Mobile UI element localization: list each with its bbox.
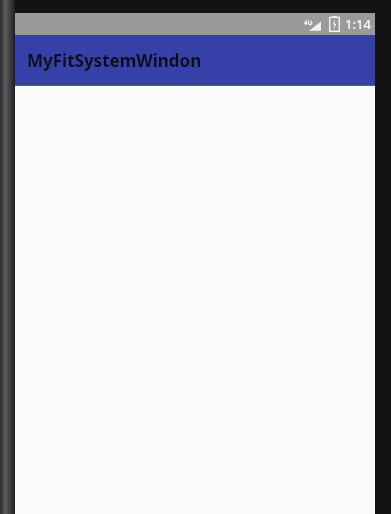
button[interactable]: MyFitSystemWindon bbox=[15, 35, 375, 86]
staticText: MyFitSystemWindon bbox=[27, 49, 202, 72]
staticText: 1:14 bbox=[345, 15, 371, 33]
